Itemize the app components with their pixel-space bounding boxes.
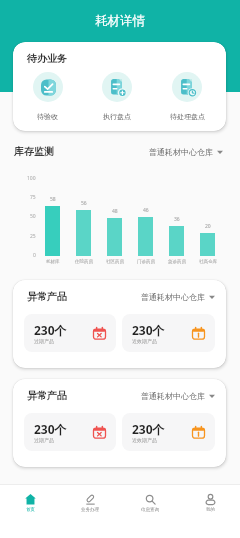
staticText: 过期产品 (34, 338, 54, 344)
button[interactable]: 执行盘点 (82, 72, 152, 121)
staticText: 20 (205, 223, 211, 230)
button[interactable]: 230个 (24, 413, 116, 451)
staticText: 耗材库 (46, 259, 60, 265)
staticText: 门诊药房 (137, 259, 155, 265)
staticText: 业务办理 (81, 507, 99, 513)
staticText: 社区药房 (106, 259, 124, 265)
staticText: 过期产品 (34, 437, 54, 443)
staticText: 0 (33, 252, 36, 259)
button[interactable]: 首页 (0, 485, 60, 538)
staticText: 36 (174, 216, 180, 223)
staticText: 首页 (26, 507, 35, 513)
staticText: 库存监测 (14, 145, 54, 158)
button[interactable]: 普通耗材中心仓库 (141, 391, 215, 401)
staticText: 230个 (34, 421, 67, 437)
button[interactable]: 待处理盘点 (152, 72, 222, 121)
staticText: 社高仓库 (199, 259, 217, 265)
staticText: 25 (30, 233, 36, 240)
button[interactable]: 普通耗材中心仓库 (141, 292, 215, 302)
button[interactable]: 待验收 (13, 72, 82, 121)
button[interactable]: 230个 (122, 413, 215, 451)
staticText: 耗材详情 (95, 13, 145, 29)
staticText: 50 (30, 213, 36, 220)
staticText: 急诊药房 (168, 259, 186, 265)
staticText: 230个 (132, 421, 165, 437)
staticText: 信息查询 (141, 507, 159, 513)
staticText: 待验收 (37, 112, 58, 121)
staticText: 执行盘点 (103, 112, 131, 121)
staticText: 48 (112, 208, 118, 215)
button[interactable]: 230个 (24, 314, 116, 352)
staticText: 近效期产品 (132, 338, 157, 344)
staticText: 58 (50, 196, 56, 203)
staticText: 230个 (34, 322, 67, 338)
staticText: 75 (30, 194, 36, 201)
button[interactable]: 业务办理 (60, 485, 120, 538)
staticText: 普通耗材中心仓库 (149, 147, 213, 157)
staticText: 异常产品 (27, 290, 67, 303)
staticText: 近效期产品 (132, 437, 157, 443)
staticText: 56 (81, 200, 87, 207)
button[interactable]: 230个 (122, 314, 215, 352)
staticText: 230个 (132, 322, 165, 338)
staticText: 待办业务 (27, 52, 67, 65)
button[interactable]: 我的 (180, 485, 240, 538)
staticText: 100 (27, 175, 36, 182)
staticText: 我的 (206, 507, 215, 513)
staticText: 普通耗材中心仓库 (141, 391, 205, 401)
staticText: 待处理盘点 (170, 112, 205, 121)
staticText: 住院药房 (75, 259, 93, 265)
staticText: 普通耗材中心仓库 (141, 292, 205, 302)
staticText: 46 (143, 207, 149, 214)
button[interactable]: 普通耗材中心仓库 (149, 147, 223, 157)
staticText: 异常产品 (27, 389, 67, 402)
button[interactable]: 信息查询 (120, 485, 180, 538)
